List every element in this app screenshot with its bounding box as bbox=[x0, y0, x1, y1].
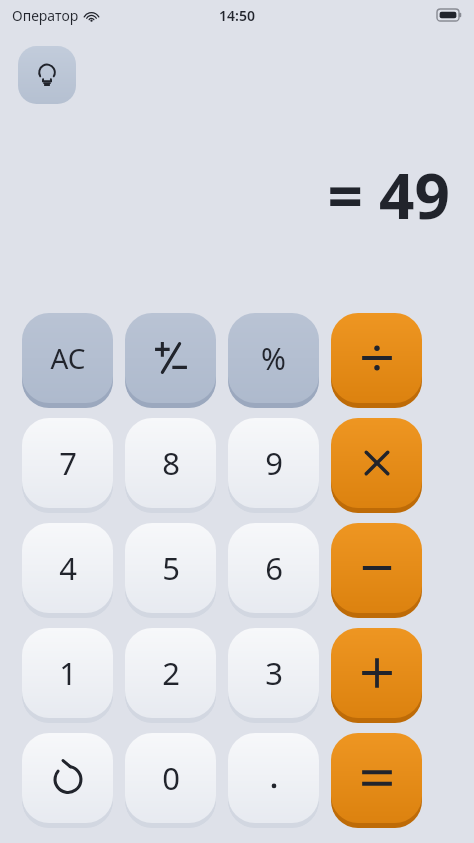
staticText: 3 bbox=[265, 652, 283, 694]
button[interactable]: Divide bbox=[331, 313, 422, 403]
staticText: = 49 bbox=[0, 153, 450, 237]
button[interactable]: 7 bbox=[22, 418, 113, 508]
staticText: 14:50 bbox=[219, 6, 255, 25]
button[interactable]: 3 bbox=[228, 628, 319, 718]
staticText: Оператор bbox=[12, 6, 79, 25]
staticText: 4 bbox=[59, 547, 77, 589]
staticText: 1 bbox=[59, 652, 77, 694]
button[interactable]: Multiply bbox=[331, 418, 422, 508]
staticText: 7 bbox=[59, 442, 77, 484]
button[interactable]: 9 bbox=[228, 418, 319, 508]
staticText: 9 bbox=[265, 442, 283, 484]
button[interactable]: 8 bbox=[125, 418, 216, 508]
button[interactable]: 0 bbox=[125, 733, 216, 823]
button[interactable]: 6 bbox=[228, 523, 319, 613]
button[interactable]: Theme bbox=[18, 46, 76, 104]
button[interactable]: % bbox=[228, 313, 319, 403]
staticText: 5 bbox=[162, 547, 180, 589]
button[interactable]: AC bbox=[22, 313, 113, 403]
button[interactable]: Plus minus bbox=[125, 313, 216, 403]
staticText: 0 bbox=[162, 757, 180, 799]
button[interactable]: Minus bbox=[331, 523, 422, 613]
staticText: AC bbox=[50, 339, 86, 377]
button[interactable]: Plus bbox=[331, 628, 422, 718]
button[interactable]: Equals bbox=[331, 733, 422, 823]
button[interactable]: 1 bbox=[22, 628, 113, 718]
staticText: 2 bbox=[162, 652, 180, 694]
staticText: % bbox=[261, 338, 286, 379]
button[interactable]: 4 bbox=[22, 523, 113, 613]
button[interactable]: 5 bbox=[125, 523, 216, 613]
button[interactable]: 2 bbox=[125, 628, 216, 718]
staticText: 6 bbox=[265, 547, 283, 589]
button[interactable]: Undo bbox=[22, 733, 113, 823]
staticText: 8 bbox=[162, 442, 180, 484]
button[interactable]: Decimal point bbox=[228, 733, 319, 823]
